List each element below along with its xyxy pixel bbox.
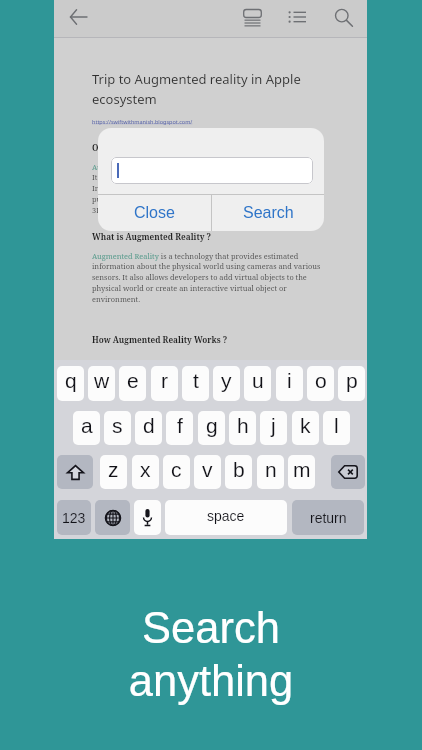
button[interactable]: [111, 157, 313, 184]
button[interactable]: y: [213, 366, 240, 401]
button[interactable]: h: [229, 411, 256, 445]
staticText: j: [271, 414, 276, 437]
button[interactable]: k: [292, 411, 319, 445]
button[interactable]: c: [163, 455, 190, 489]
button[interactable]: Change keyboard: [95, 500, 130, 535]
button[interactable]: m: [288, 455, 315, 489]
staticText: https://swiftwithmanish.blogspot.com/: [92, 118, 193, 125]
staticText: Search anything: [0, 604, 422, 706]
button[interactable]: o: [307, 366, 334, 401]
staticText: r: [161, 369, 168, 392]
staticText: d: [143, 414, 155, 437]
staticText: w: [94, 369, 110, 392]
staticText: Augmented Reality is a technology that p…: [92, 251, 321, 304]
button[interactable]: Search: [328, 2, 358, 32]
staticText: q: [65, 369, 77, 392]
button[interactable]: return: [292, 500, 364, 535]
button[interactable]: l: [323, 411, 350, 445]
staticText: c: [171, 458, 182, 481]
button[interactable]: g: [198, 411, 225, 445]
staticText: k: [300, 414, 311, 437]
button[interactable]: f: [166, 411, 193, 445]
button[interactable]: Reader view: [237, 2, 267, 32]
button[interactable]: r: [151, 366, 178, 401]
staticText: v: [202, 458, 213, 481]
staticText: p: [346, 369, 358, 392]
staticText: l: [334, 414, 339, 437]
staticText: 123: [62, 510, 86, 526]
staticText: i: [287, 369, 292, 392]
staticText: y: [221, 369, 232, 392]
button[interactable]: Search: [212, 195, 324, 231]
staticText: h: [237, 414, 249, 437]
staticText: Overview: [92, 142, 132, 153]
button[interactable]: q: [57, 366, 84, 401]
button[interactable]: i: [276, 366, 303, 401]
staticText: t: [193, 369, 199, 392]
button[interactable]: 123: [57, 500, 91, 535]
staticText: x: [140, 458, 151, 481]
staticText: z: [108, 458, 119, 481]
staticText: How Augmented Reality Works ?: [92, 334, 228, 345]
button[interactable]: j: [260, 411, 287, 445]
staticText: Close: [134, 204, 175, 222]
staticText: u: [252, 369, 264, 392]
button[interactable]: Close: [98, 195, 211, 231]
staticText: n: [265, 458, 277, 481]
button[interactable]: Delete: [331, 455, 365, 489]
button[interactable]: n: [257, 455, 284, 489]
staticText: space: [207, 508, 245, 524]
button[interactable]: Bookmarks: [282, 2, 312, 32]
button[interactable]: d: [135, 411, 162, 445]
button[interactable]: Dictate: [134, 500, 161, 535]
button[interactable]: x: [132, 455, 159, 489]
staticText: Trip to Augmented reality in Apple ecosy…: [92, 70, 301, 108]
button[interactable]: Shift: [57, 455, 93, 489]
staticText: Search: [243, 204, 294, 222]
staticText: o: [315, 369, 327, 392]
button[interactable]: w: [88, 366, 115, 401]
button[interactable]: space: [165, 500, 287, 535]
button[interactable]: v: [194, 455, 221, 489]
button[interactable]: t: [182, 366, 209, 401]
staticText: Augmented Reality is not limited to just…: [92, 162, 291, 215]
staticText: g: [206, 414, 218, 437]
button[interactable]: e: [119, 366, 146, 401]
staticText: a: [81, 414, 93, 437]
staticText: e: [127, 369, 139, 392]
button[interactable]: u: [244, 366, 271, 401]
button[interactable]: a: [73, 411, 100, 445]
button[interactable]: z: [100, 455, 127, 489]
button[interactable]: p: [338, 366, 365, 401]
staticText: m: [293, 458, 311, 481]
button[interactable]: Back: [63, 2, 93, 32]
staticText: return: [310, 510, 347, 526]
staticText: f: [177, 414, 183, 437]
staticText: b: [233, 458, 245, 481]
button[interactable]: b: [225, 455, 252, 489]
button[interactable]: s: [104, 411, 131, 445]
staticText: s: [112, 414, 123, 437]
staticText: What is Augmented Reality ?: [92, 231, 212, 242]
